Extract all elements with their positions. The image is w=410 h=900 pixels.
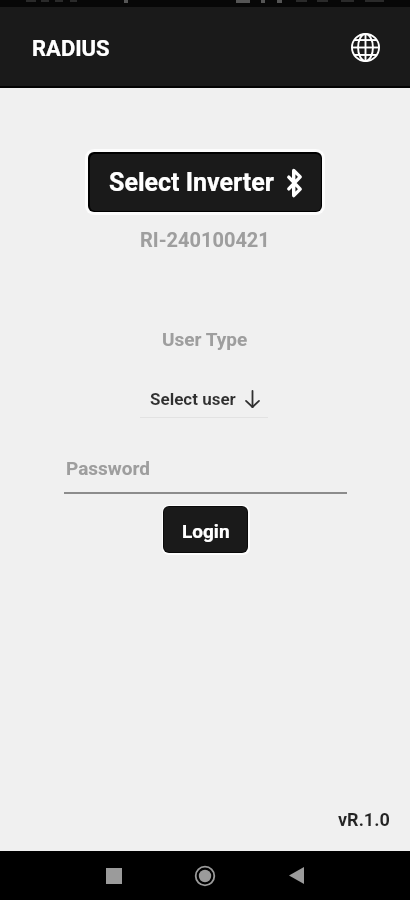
staticText: RADIUS xyxy=(32,36,110,62)
button[interactable]: Select user xyxy=(140,389,268,418)
button[interactable]: Select Inverter xyxy=(88,152,322,212)
staticText: Select Inverter xyxy=(109,168,274,197)
staticText: vR.1.0 xyxy=(338,809,390,830)
staticText: RI-240100421 xyxy=(140,228,270,251)
button[interactable]: Home xyxy=(175,851,235,900)
button[interactable]: Login xyxy=(163,506,248,553)
staticText: Login xyxy=(182,520,230,542)
staticText: User Type xyxy=(162,328,248,350)
button[interactable]: Language xyxy=(345,27,386,68)
button[interactable]: Recents xyxy=(84,851,144,900)
button[interactable]: Back xyxy=(266,851,326,900)
staticText: Select user xyxy=(150,389,236,409)
staticText: Password xyxy=(66,457,150,479)
